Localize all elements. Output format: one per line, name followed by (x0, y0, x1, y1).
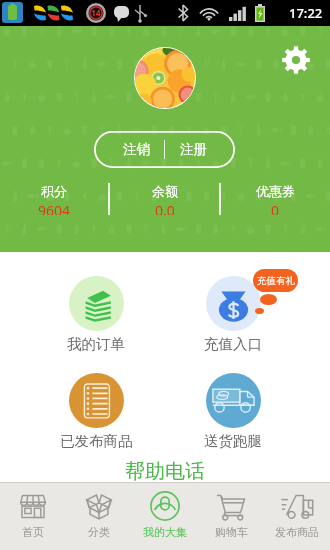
button[interactable]: 充值有礼 (253, 269, 298, 292)
button[interactable]: Settings (278, 42, 314, 78)
staticText: 0 (271, 201, 280, 215)
staticText: 余额 (152, 183, 178, 199)
button[interactable]: 优惠券 (221, 183, 330, 215)
button[interactable]: 帮助电话 (0, 456, 330, 486)
staticText: 14 (91, 7, 101, 19)
staticText: 我的订单 (67, 335, 125, 353)
staticText: 注销 (123, 141, 150, 158)
staticText: 9604 (38, 201, 71, 215)
staticText: 已发布商品 (60, 432, 133, 450)
staticText: 我的大集 (143, 525, 187, 539)
button[interactable]: 发布商品 (264, 483, 330, 550)
staticText: 17:22 (289, 4, 323, 22)
staticText: 优惠券 (256, 183, 295, 199)
staticText: 首页 (22, 525, 44, 539)
staticText: 送货跑腿 (204, 432, 262, 450)
button[interactable]: 送货跑腿 (183, 370, 283, 455)
button[interactable]: 我的大集 (132, 483, 198, 550)
button[interactable]: 充值入口 (183, 273, 283, 358)
staticText: 积分 (41, 183, 67, 199)
button[interactable]: 积分 (0, 183, 108, 215)
button[interactable]: 我的订单 (46, 273, 146, 358)
staticText: 0.0 (155, 201, 175, 215)
button[interactable]: 注册 (165, 131, 221, 168)
button[interactable]: Profile photo (135, 48, 195, 108)
staticText: 充值有礼 (257, 275, 295, 287)
staticText: 注册 (180, 141, 207, 158)
staticText: 分类 (88, 525, 110, 539)
button[interactable]: 注销 (108, 131, 164, 168)
staticText: 帮助电话 (125, 459, 205, 484)
staticText: 购物车 (215, 525, 248, 539)
button[interactable]: 购物车 (198, 483, 264, 550)
staticText: 发布商品 (275, 525, 319, 539)
button[interactable]: 已发布商品 (46, 370, 146, 455)
staticText: 充值入口 (204, 335, 262, 353)
button[interactable]: 首页 (0, 483, 66, 550)
button[interactable]: 分类 (66, 483, 132, 550)
button[interactable]: 余额 (110, 183, 219, 215)
